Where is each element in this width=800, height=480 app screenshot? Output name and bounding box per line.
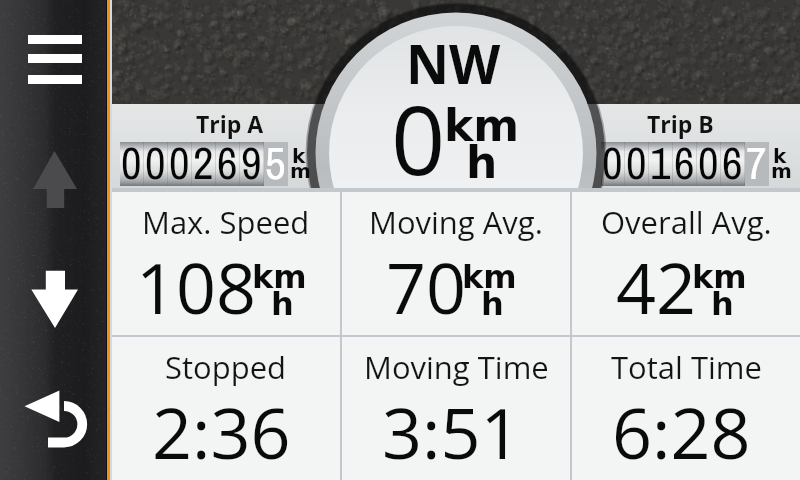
staticText: 0 [145, 132, 166, 193]
staticText: k [773, 144, 787, 167]
staticText: Trip B [647, 108, 714, 139]
staticText: k [292, 144, 306, 167]
staticText: 0 [391, 73, 446, 188]
button[interactable]: Scroll up [20, 140, 92, 220]
button[interactable]: 0 [120, 142, 312, 186]
staticText: 0 [121, 132, 142, 193]
staticText: 42 [616, 239, 697, 334]
staticText: Stopped [165, 346, 287, 388]
staticText: 5 [265, 132, 286, 193]
staticText: h [481, 285, 504, 322]
button[interactable]: Menu [14, 14, 94, 104]
staticText: m [771, 159, 792, 182]
staticText: 6 [217, 132, 238, 193]
staticText: 6 [722, 132, 743, 193]
staticText: 2 [193, 132, 214, 193]
button[interactable]: Overall Avg. [572, 192, 800, 335]
staticText: Total Time [611, 346, 762, 388]
staticText: 0 [698, 132, 719, 193]
button[interactable]: 0 [601, 142, 793, 186]
staticText: h [711, 285, 734, 322]
staticText: h [466, 137, 498, 188]
button[interactable]: Trip B [610, 106, 750, 140]
button[interactable]: Back [16, 380, 96, 460]
staticText: km [444, 100, 520, 151]
staticText: km [252, 258, 307, 295]
staticText: 108 [136, 239, 257, 334]
staticText: Moving Time [364, 346, 549, 388]
staticText: Max. Speed [142, 201, 310, 243]
staticText: 70 [386, 239, 467, 334]
button[interactable]: Stopped [112, 337, 340, 480]
button[interactable]: Scroll down [20, 262, 92, 338]
button[interactable]: Trip A [160, 106, 300, 140]
staticText: km [692, 258, 747, 295]
staticText: 6 [674, 132, 695, 193]
staticText: km [462, 258, 517, 295]
staticText: 2:36 [152, 384, 291, 479]
button[interactable]: Max. Speed [112, 192, 340, 335]
staticText: NW [406, 27, 501, 99]
staticText: Trip A [196, 108, 264, 139]
staticText: Moving Avg. [369, 201, 543, 243]
button[interactable]: Moving Time [342, 337, 570, 480]
staticText: 0 [169, 132, 190, 193]
button[interactable]: Moving Avg. [342, 192, 570, 335]
staticText: 1 [650, 132, 671, 193]
staticText: 0 [602, 132, 623, 193]
button[interactable]: Total Time [572, 337, 800, 480]
staticText: h [271, 285, 294, 322]
staticText: 9 [241, 132, 262, 193]
staticText: 6:28 [612, 384, 751, 479]
staticText: 3:51 [382, 384, 521, 479]
staticText: 0 [626, 132, 647, 193]
staticText: m [290, 159, 311, 182]
staticText: Overall Avg. [601, 201, 772, 243]
staticText: 7 [746, 132, 767, 193]
